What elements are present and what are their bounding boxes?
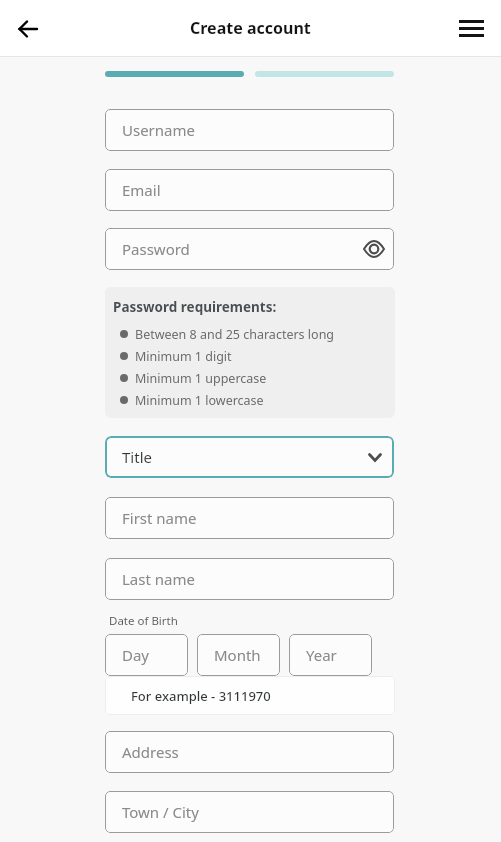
staticText: Date of Birth [109, 613, 178, 629]
button[interactable]: Town / City [105, 791, 394, 833]
staticText: Between 8 and 25 characters long [135, 326, 335, 343]
staticText: Email [122, 180, 394, 200]
staticText: Minimum 1 digit [135, 348, 232, 365]
button[interactable]: Title [105, 436, 394, 478]
button[interactable]: Last name [105, 558, 394, 600]
button[interactable]: Address [105, 731, 394, 773]
staticText: Address [122, 742, 394, 762]
staticText: For example - 3111970 [131, 687, 271, 705]
staticText: Town / City [122, 802, 394, 822]
staticText: Minimum 1 lowercase [135, 392, 264, 409]
button[interactable]: Year [289, 634, 372, 676]
button[interactable]: Email [105, 169, 394, 211]
staticText: Month [214, 645, 280, 665]
staticText: Day [122, 645, 188, 665]
button[interactable]: Day [105, 634, 188, 676]
staticText: Password requirements: [113, 298, 277, 316]
staticText: Password [122, 239, 361, 259]
staticText: Year [306, 645, 372, 665]
button[interactable]: Password [105, 228, 394, 270]
button[interactable] [12, 13, 44, 45]
button[interactable]: First name [105, 497, 394, 539]
button[interactable] [459, 20, 484, 37]
staticText: Username [122, 120, 394, 140]
staticText: Last name [122, 569, 394, 589]
button[interactable]: Username [105, 109, 394, 151]
staticText: Minimum 1 uppercase [135, 370, 267, 387]
staticText: Create account [190, 17, 311, 39]
staticText: First name [122, 508, 394, 528]
button[interactable]: Month [197, 634, 280, 676]
staticText: Title [122, 447, 368, 467]
